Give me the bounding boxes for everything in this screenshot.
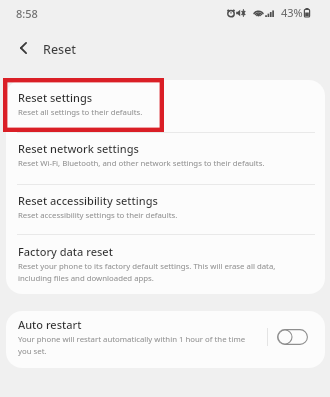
staticText: Auto restart (18, 317, 82, 332)
button[interactable] (6, 234, 325, 294)
staticText: Reset accessibility settings to their de… (18, 210, 178, 221)
staticText: Reset all settings to their defaults. (18, 107, 143, 118)
button[interactable]: Back (9, 33, 38, 62)
staticText: Reset (43, 41, 77, 58)
staticText: 8:58 (16, 6, 38, 21)
button[interactable] (6, 132, 325, 184)
button[interactable] (6, 184, 325, 234)
staticText: Reset settings (18, 90, 93, 105)
staticText: Your phone will restart automatically wi… (18, 334, 254, 356)
button[interactable] (6, 80, 325, 132)
button[interactable] (6, 311, 325, 368)
staticText: Reset accessibility settings (18, 193, 158, 208)
staticText: Reset your phone to its factory default … (18, 261, 288, 283)
staticText: Reset Wi-Fi, Bluetooth, and other networ… (18, 158, 265, 169)
staticText: 43% (281, 5, 303, 20)
staticText: Reset network settings (18, 141, 139, 156)
button[interactable]: Auto restart toggle (277, 329, 308, 345)
staticText: Factory data reset (18, 244, 113, 259)
